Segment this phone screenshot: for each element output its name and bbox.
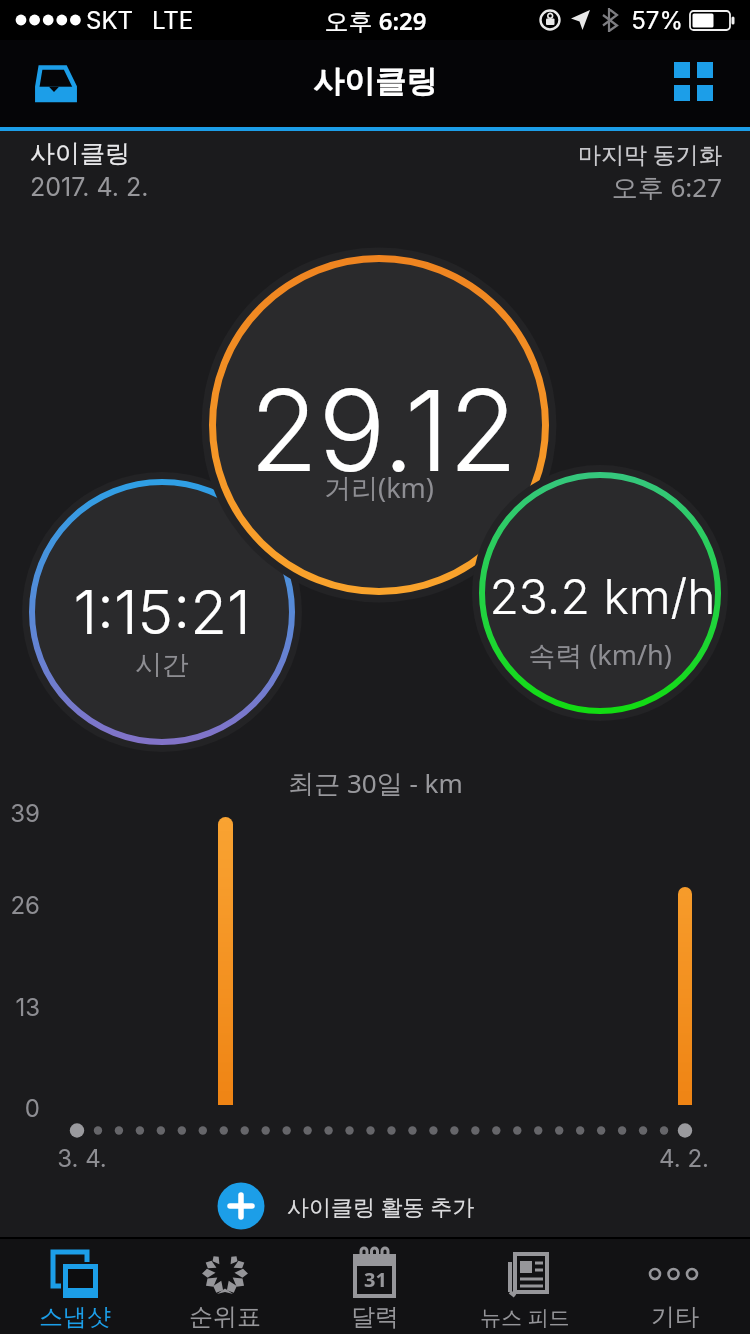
button[interactable]: 사이클링 활동 추가 — [195, 1172, 575, 1238]
staticText: 오후 6:27 — [611, 169, 722, 203]
staticText: 달력 — [351, 1302, 399, 1332]
staticText: 4. 2. — [659, 1144, 709, 1173]
button[interactable] — [660, 52, 728, 116]
staticText: 0 — [24, 1094, 40, 1123]
staticText: 뉴스 피드 — [480, 1303, 570, 1332]
button[interactable]: 순위표 — [150, 1240, 300, 1334]
staticText: 23.2 km/h — [489, 567, 716, 625]
staticText: 2017. 4. 2. — [30, 172, 149, 202]
staticText: 거리(km) — [324, 469, 434, 505]
staticText: 기타 — [651, 1302, 699, 1332]
staticText: 속력 (km/h) — [528, 636, 672, 670]
staticText: LTE — [152, 6, 194, 35]
staticText: 13 — [15, 993, 40, 1022]
staticText: 최근 30일 - km — [288, 765, 463, 801]
staticText: 31 — [364, 1266, 387, 1292]
staticText: 57% — [631, 6, 683, 35]
staticText: 사이클링 활동 추가 — [287, 1191, 475, 1221]
staticText: 오후 6:29 — [324, 4, 427, 37]
staticText: 시간 — [135, 648, 189, 682]
button[interactable]: 스냅샷 — [0, 1240, 150, 1334]
button[interactable]: 달력 — [300, 1240, 450, 1334]
staticText: 마지막 동기화 — [578, 138, 722, 169]
staticText: 26 — [10, 891, 40, 920]
staticText: 스냅샷 — [39, 1302, 111, 1332]
button[interactable] — [20, 52, 90, 116]
staticText: 1:15:21 — [73, 576, 251, 649]
button[interactable]: 뉴스 피드 — [450, 1240, 600, 1334]
staticText: 순위표 — [189, 1302, 261, 1332]
staticText: 사이클링 — [313, 62, 437, 101]
staticText: SKT — [86, 6, 134, 35]
staticText: 사이클링 — [30, 138, 130, 169]
button[interactable]: 기타 — [600, 1240, 750, 1334]
staticText: 29.12 — [249, 362, 518, 498]
staticText: 39 — [10, 799, 40, 828]
staticText: 3. 4. — [57, 1144, 107, 1173]
